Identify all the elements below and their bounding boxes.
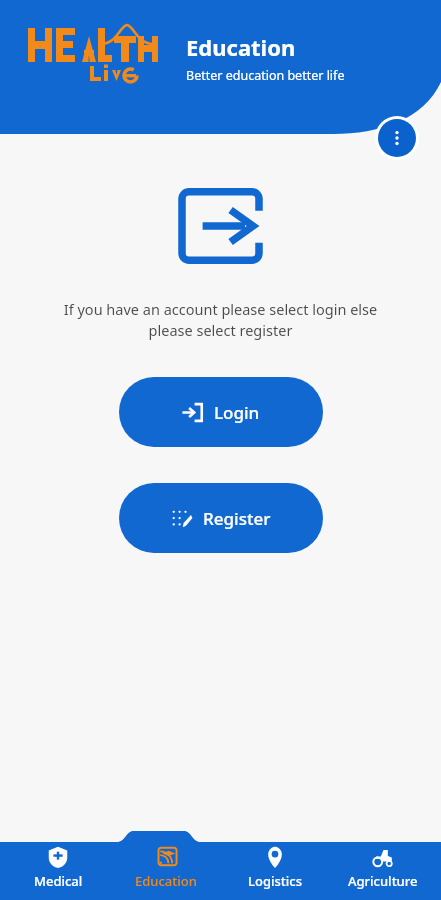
staticText: Education bbox=[135, 872, 197, 890]
button[interactable]: Login bbox=[119, 377, 323, 447]
staticText: If you have an account please select log… bbox=[20, 299, 421, 341]
button[interactable]: Register bbox=[119, 483, 323, 553]
staticText: Education bbox=[186, 32, 296, 62]
staticText: Logistics bbox=[248, 872, 302, 890]
staticText: Agriculture bbox=[348, 872, 418, 890]
button[interactable]: Medical bbox=[8, 844, 108, 890]
button[interactable]: More options bbox=[378, 119, 416, 157]
staticText: Better education better life bbox=[186, 67, 345, 84]
button[interactable]: Agriculture bbox=[333, 844, 433, 890]
button[interactable]: Education bbox=[116, 844, 216, 890]
staticText: Medical bbox=[34, 872, 83, 890]
button[interactable]: Logistics bbox=[225, 844, 325, 890]
staticText: Register bbox=[203, 507, 271, 530]
staticText: Login bbox=[214, 401, 260, 424]
